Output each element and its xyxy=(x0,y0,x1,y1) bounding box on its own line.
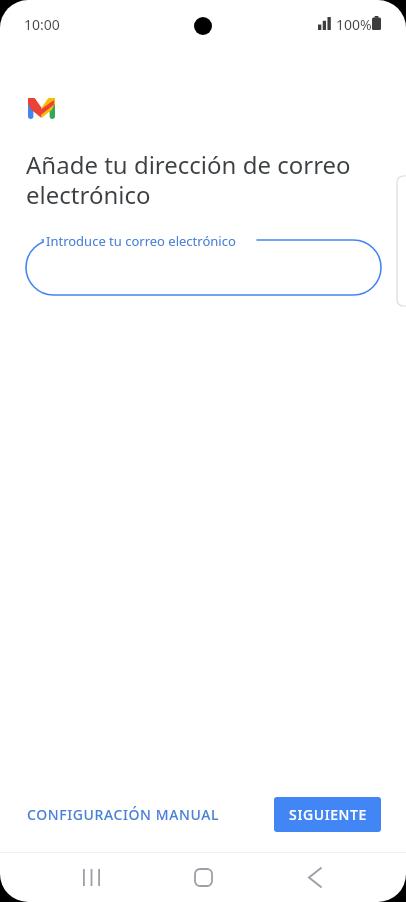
button[interactable]: CONFIGURACIÓN MANUAL xyxy=(18,798,229,831)
staticText: Añade tu dirección de correo electrónico xyxy=(26,148,382,211)
button[interactable]: Back xyxy=(291,853,339,901)
button[interactable]: SIGUIENTE xyxy=(274,797,381,832)
button[interactable]: Home xyxy=(179,853,227,901)
staticText: Introduce tu correo electrónico xyxy=(46,232,236,250)
staticText: 100% xyxy=(336,15,372,34)
staticText: 10:00 xyxy=(24,15,60,34)
other: Gmail xyxy=(28,98,55,119)
button[interactable]: Introduce tu correo electrónico xyxy=(26,240,381,295)
button[interactable]: Recent apps xyxy=(67,853,115,901)
staticText: CONFIGURACIÓN MANUAL xyxy=(27,805,220,824)
staticText: SIGUIENTE xyxy=(289,805,367,824)
